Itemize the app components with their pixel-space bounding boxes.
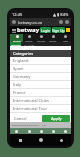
button[interactable]: Login [40,27,51,33]
staticText: Spain [13,66,24,71]
button[interactable]: International Clubs [10,97,71,104]
button[interactable]: International Tour [10,105,71,112]
button[interactable]: Recents [10,134,31,146]
staticText: Responsible gambling | 18+ [12,123,47,126]
staticText: England [13,58,29,63]
staticText: betway [17,26,40,34]
button[interactable]: Leagues [10,42,21,46]
button[interactable]: Back [51,134,71,146]
staticText: betway.co.za [18,20,43,25]
staticText: Tennis [25,39,33,42]
button[interactable]: Sign Up [52,27,65,33]
button[interactable]: Cricket [35,34,47,42]
staticText: International Tour [13,106,48,111]
button[interactable]: Soccer [10,34,23,42]
staticText: Golf [63,39,68,42]
staticText: ▲ ▮ 84% [53,12,69,17]
button[interactable]: Nav 0 [10,128,23,134]
button[interactable]: Germany [10,73,71,80]
button[interactable]: Nav 4 [59,128,71,134]
button[interactable]: Nav 3 [47,128,59,134]
button[interactable]: Nav 2 [35,128,47,134]
button[interactable]: Tennis [23,34,35,42]
button[interactable]: Spain [10,65,71,72]
button[interactable]: Apply [42,115,70,122]
staticText: International Clubs [13,98,49,103]
button[interactable]: Italy [10,81,71,88]
button[interactable]: Home [31,134,51,146]
button[interactable]: Menu [11,28,16,33]
staticText: Cancel [14,116,27,121]
staticText: Cricket [37,39,46,42]
staticText: Login [41,28,51,33]
staticText: Soccer [13,39,21,42]
button[interactable]: Nav 1 [23,128,35,134]
staticText: Apply [51,116,62,121]
button[interactable]: Secure [12,20,16,24]
button[interactable]: England [10,57,71,64]
staticText: Leagues [11,43,21,46]
staticText: Germany [13,74,31,79]
staticText: Categories [13,51,34,56]
staticText: Sign Up [52,28,65,33]
button[interactable]: More options [65,20,69,24]
staticText: Rugby [49,39,57,42]
button[interactable]: Rugby [47,34,59,42]
staticText: France [13,90,26,95]
button[interactable]: Golf [59,34,71,42]
button[interactable]: France [10,89,71,96]
button[interactable]: Cancel [11,115,29,122]
staticText: Italy [13,82,22,87]
staticText: 12:45 [12,12,23,17]
staticText: All Types [24,43,35,46]
button[interactable]: Tabs [59,20,63,24]
